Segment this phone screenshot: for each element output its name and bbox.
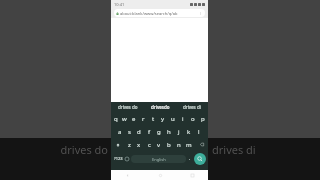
staticText: z <box>128 141 131 149</box>
button[interactable]: Backspace <box>194 138 208 151</box>
button[interactable]: r <box>138 112 148 125</box>
staticText: . <box>189 155 191 162</box>
button[interactable]: s <box>124 125 134 138</box>
button[interactable]: i <box>178 112 188 125</box>
button[interactable]: z <box>124 138 134 151</box>
staticText: h <box>167 128 171 136</box>
button[interactable]: q <box>111 112 120 125</box>
staticText: v <box>157 141 161 149</box>
staticText: drives di <box>183 104 201 110</box>
button[interactable]: Emoji <box>124 156 130 162</box>
button[interactable]: f <box>144 125 154 138</box>
staticText: l <box>198 128 200 136</box>
staticText: u <box>171 115 175 123</box>
button[interactable]: x <box>134 138 144 151</box>
staticText: p <box>201 115 205 123</box>
button[interactable]: o <box>188 112 198 125</box>
button[interactable]: b <box>164 138 174 151</box>
staticText: j <box>178 128 180 136</box>
button[interactable]: k <box>184 125 194 138</box>
staticText: t <box>152 115 155 123</box>
button[interactable]: More options <box>198 11 203 16</box>
staticText: drives do <box>0 142 108 157</box>
staticText: o <box>191 115 195 123</box>
staticText: w <box>122 115 127 123</box>
button[interactable]: Shift <box>111 138 124 151</box>
button[interactable]: drives di <box>176 102 208 111</box>
staticText: b <box>167 141 171 149</box>
button[interactable]: j <box>174 125 184 138</box>
button[interactable]: g <box>154 125 164 138</box>
button[interactable]: Recents <box>176 170 208 180</box>
staticText: about:blank/www/search/q/ab <box>120 11 178 16</box>
button[interactable]: Space <box>131 155 186 163</box>
staticText: English <box>152 157 166 162</box>
button[interactable]: a <box>115 125 124 138</box>
button[interactable]: Search <box>194 153 206 165</box>
staticText: g <box>157 128 161 136</box>
staticText: m <box>186 141 192 149</box>
button[interactable]: . <box>187 151 193 166</box>
button[interactable]: u <box>168 112 178 125</box>
staticText: s <box>128 128 131 136</box>
staticText: ?123 <box>114 156 123 161</box>
button[interactable]: e <box>129 112 138 125</box>
button[interactable]: m <box>184 138 194 151</box>
button[interactable]: v <box>154 138 164 151</box>
staticText: f <box>148 128 151 136</box>
button[interactable]: drivesdo <box>144 102 176 111</box>
button[interactable]: y <box>158 112 168 125</box>
button[interactable]: p <box>198 112 208 125</box>
button[interactable]: ?123 <box>113 151 124 166</box>
staticText: x <box>137 141 141 149</box>
button[interactable]: d <box>134 125 144 138</box>
staticText: e <box>132 115 136 123</box>
button[interactable]: w <box>120 112 129 125</box>
staticText: a <box>118 128 122 136</box>
button[interactable]: t <box>148 112 158 125</box>
staticText: drives di <box>212 142 320 157</box>
staticText: d <box>137 128 141 136</box>
staticText: 10:41 <box>114 2 125 7</box>
staticText: drivesdo <box>151 104 170 110</box>
staticText: q <box>114 115 118 123</box>
button[interactable]: c <box>144 138 154 151</box>
staticText: i <box>182 115 184 123</box>
button[interactable]: n <box>174 138 184 151</box>
button[interactable]: about:blank/www/search/q/ab <box>114 9 205 17</box>
button[interactable]: h <box>164 125 174 138</box>
staticText: y <box>161 115 165 123</box>
staticText: drives do <box>118 104 138 110</box>
staticText: c <box>148 141 151 149</box>
staticText: k <box>187 128 191 136</box>
button[interactable]: l <box>194 125 204 138</box>
button[interactable]: drives do <box>111 102 144 111</box>
staticText: r <box>142 115 145 123</box>
staticText: n <box>177 141 181 149</box>
